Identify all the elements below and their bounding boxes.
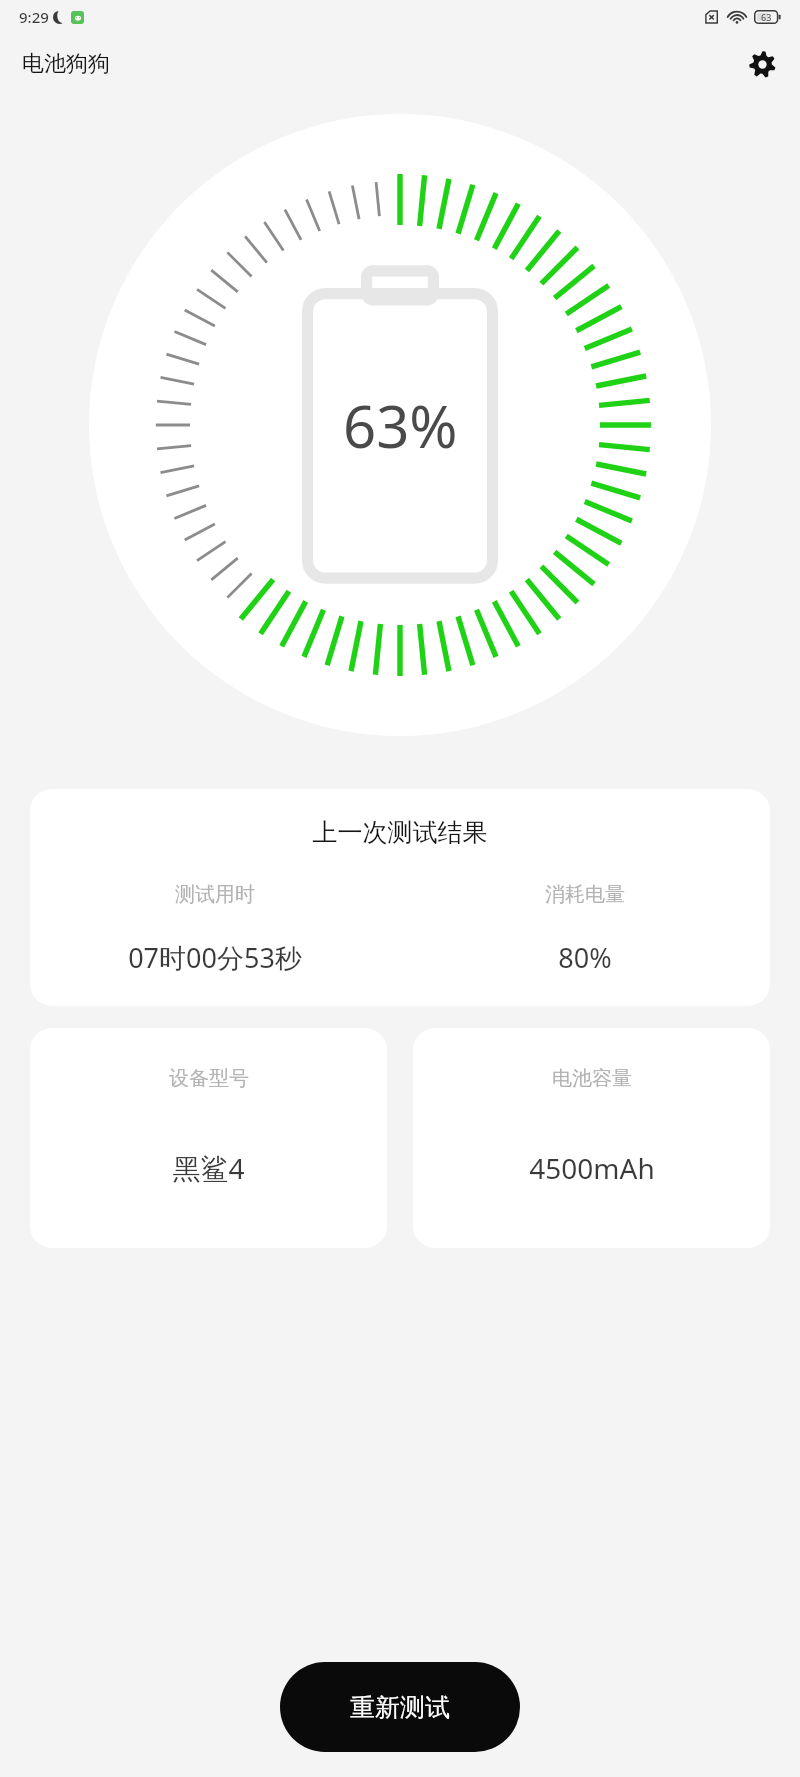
button[interactable]: 设备型号 xyxy=(30,1028,387,1248)
staticText: 重新测试 xyxy=(350,1692,450,1723)
staticText: 63% xyxy=(343,386,458,465)
staticText: 上一次测试结果 xyxy=(30,817,770,848)
staticText: 9:29 xyxy=(19,7,49,27)
staticText: 设备型号 xyxy=(169,1066,249,1091)
staticText: 80% xyxy=(558,939,612,976)
staticText: 07时00分53秒 xyxy=(128,939,302,976)
button[interactable]: Settings xyxy=(738,40,786,88)
staticText: 电池容量 xyxy=(552,1066,632,1091)
staticText: 黑鲨4 xyxy=(172,1149,245,1187)
button[interactable]: 电池容量 xyxy=(413,1028,770,1248)
button[interactable]: 重新测试 xyxy=(280,1662,520,1752)
staticText: 测试用时 xyxy=(175,882,255,907)
staticText: 4500mAh xyxy=(529,1149,655,1187)
staticText: 电池狗狗 xyxy=(22,50,110,78)
staticText: 63 xyxy=(761,11,772,23)
button[interactable]: 上一次测试结果 xyxy=(30,789,770,1006)
staticText: 消耗电量 xyxy=(545,882,625,907)
